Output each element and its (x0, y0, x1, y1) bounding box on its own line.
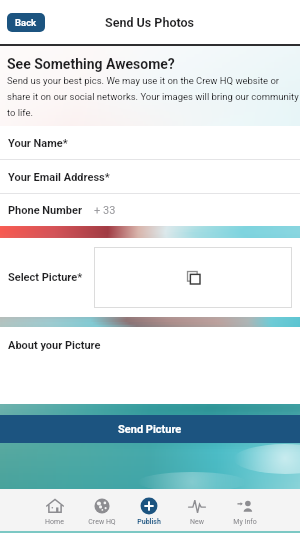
staticText: Crew HQ (88, 518, 116, 526)
staticText: My Info (233, 518, 257, 526)
button[interactable]: My Info (221, 489, 269, 533)
button[interactable]: Home (31, 489, 78, 533)
button[interactable]: Back (7, 13, 45, 32)
staticText: Your Name* (8, 137, 68, 150)
button[interactable]: Your Name* (0, 126, 300, 160)
staticText: Phone Number (8, 204, 82, 217)
button[interactable]: Your Email Address* (0, 160, 300, 194)
staticText: Back (15, 17, 37, 28)
button[interactable]: Publish (125, 489, 173, 533)
button[interactable]: Select a picture (94, 247, 292, 308)
staticText: Send Us Photos (105, 15, 195, 30)
button[interactable]: New (173, 489, 221, 533)
button[interactable]: Send Picture (0, 415, 300, 443)
staticText: + 33 (94, 204, 116, 217)
staticText: Your Email Address* (8, 171, 110, 184)
staticText: Send us your best pics. We may use it on… (7, 75, 300, 118)
staticText: Publish (137, 518, 161, 526)
staticText: New (190, 518, 204, 526)
staticText: Send Picture (118, 423, 182, 436)
staticText: About your Picture (8, 339, 101, 352)
button[interactable]: About your Picture (0, 327, 300, 404)
button[interactable]: Crew HQ (78, 489, 125, 533)
staticText: See Something Awesome? (7, 56, 175, 72)
button[interactable]: Phone Number (0, 194, 300, 226)
staticText: Select Picture* (8, 271, 83, 284)
staticText: Home (45, 518, 64, 526)
